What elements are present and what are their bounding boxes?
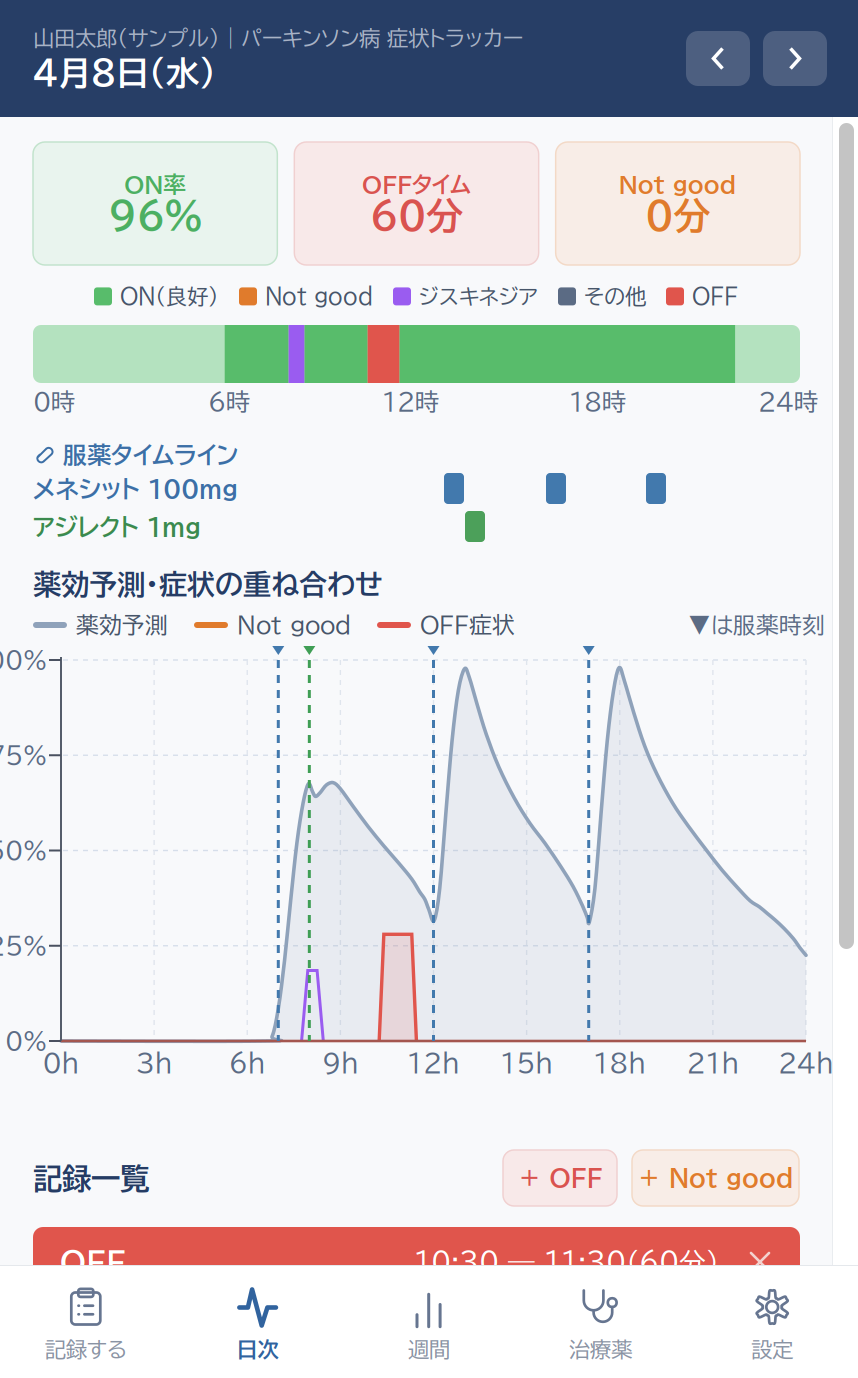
staticText: OFF症状 <box>420 614 515 636</box>
staticText: 9h <box>322 1051 359 1075</box>
staticText: OFF <box>692 286 738 307</box>
staticText: 10:30 — 11:30（60分） <box>414 1249 719 1275</box>
staticText: 設定 <box>751 1339 793 1360</box>
button[interactable]: 治療薬 <box>515 1265 686 1378</box>
staticText: アジレクト 1mg <box>33 515 201 539</box>
staticText: 治療薬 <box>569 1339 632 1360</box>
staticText: 山田太郎（サンプル）｜パーキンソン病 症状トラッカー <box>33 28 523 49</box>
staticText: 薬効予測 <box>76 614 168 636</box>
staticText: Not good <box>265 286 373 307</box>
staticText: 記録する <box>45 1339 127 1360</box>
staticText: メネシット 100mg <box>33 477 238 501</box>
staticText: 0h <box>42 1051 79 1075</box>
staticText: ON（良好） <box>120 286 219 307</box>
staticText: 12h <box>407 1051 460 1075</box>
button[interactable]: 設定 <box>686 1265 858 1378</box>
staticText: 週間 <box>408 1339 450 1360</box>
button[interactable]: 次の日 <box>763 31 827 86</box>
staticText: OFFタイム <box>362 173 471 195</box>
staticText: 25% <box>0 934 47 957</box>
staticText: 18時 <box>569 390 626 413</box>
staticText: 18h <box>593 1051 646 1075</box>
button[interactable]: 前の日 <box>686 31 750 86</box>
staticText: 15h <box>500 1051 553 1075</box>
staticText: ＋ Not good <box>637 1166 794 1190</box>
staticText: 4月8日（水） <box>33 57 216 89</box>
staticText: 0% <box>5 1029 47 1053</box>
staticText: 薬効予測・症状の重ね合わせ <box>33 570 383 598</box>
staticText: OFF <box>60 1248 126 1276</box>
staticText: 記録一覧 <box>33 1164 149 1193</box>
staticText: 0時 <box>33 390 75 413</box>
button[interactable]: 日次 <box>172 1265 343 1378</box>
button[interactable]: 週間 <box>343 1265 515 1378</box>
staticText: Not good <box>619 173 737 195</box>
staticText: Not good <box>237 614 351 636</box>
button[interactable]: 記録する <box>0 1265 172 1378</box>
staticText: 50% <box>0 839 47 862</box>
staticText: 12時 <box>382 390 439 413</box>
staticText: ジスキネジア <box>419 286 538 307</box>
staticText: 21h <box>686 1051 739 1075</box>
staticText: 24h <box>778 1051 834 1075</box>
button[interactable]: ＋ Not good <box>632 1150 799 1206</box>
staticText: ON率 <box>124 173 186 195</box>
staticText: 6h <box>229 1051 266 1075</box>
staticText: 6時 <box>208 390 250 413</box>
staticText: 日次 <box>236 1339 278 1360</box>
staticText: 0分 <box>645 197 710 234</box>
staticText: 服薬タイムライン <box>63 443 238 467</box>
staticText: 75% <box>0 743 47 767</box>
staticText: その他 <box>584 286 646 307</box>
staticText: 24時 <box>758 390 818 413</box>
staticText: 3h <box>136 1051 173 1075</box>
staticText: 96% <box>109 197 202 234</box>
staticText: 60分 <box>370 197 463 234</box>
staticText: 00% <box>0 648 47 672</box>
staticText: ＋ OFF <box>517 1166 602 1190</box>
staticText: ▼は服薬時刻 <box>688 614 825 636</box>
button[interactable]: ＋ OFF <box>503 1150 617 1206</box>
